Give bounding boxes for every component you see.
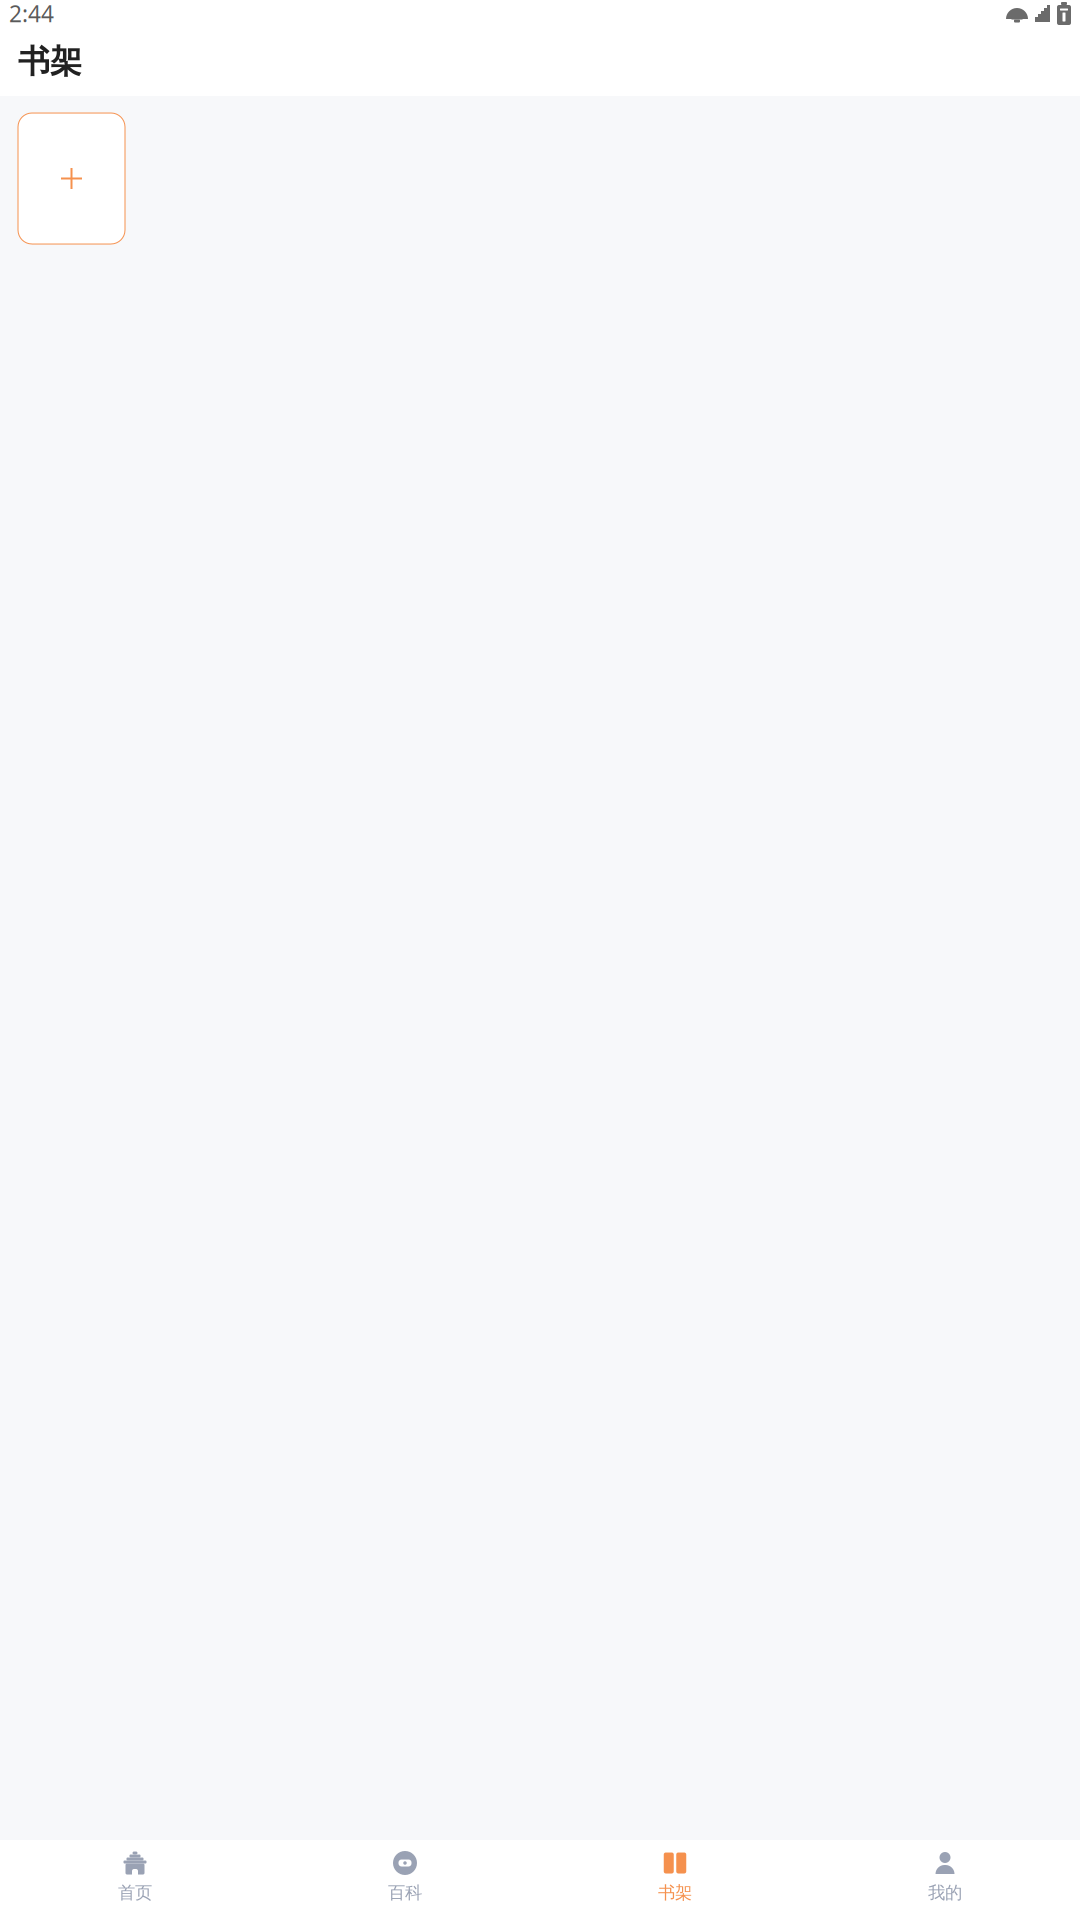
staticText: 书架 (18, 42, 82, 81)
button[interactable]: 百科 (270, 1840, 540, 1909)
staticText: 书架 (658, 1882, 692, 1903)
button[interactable]: 书架 (540, 1840, 810, 1909)
staticText: 我的 (928, 1882, 962, 1903)
staticText: 首页 (118, 1882, 152, 1903)
button[interactable]: 添加书籍 (18, 113, 125, 244)
button[interactable]: 我的 (810, 1840, 1080, 1909)
staticText: 百科 (388, 1882, 422, 1903)
button[interactable]: 首页 (0, 1840, 270, 1909)
staticText: 2:44 (9, 0, 54, 28)
